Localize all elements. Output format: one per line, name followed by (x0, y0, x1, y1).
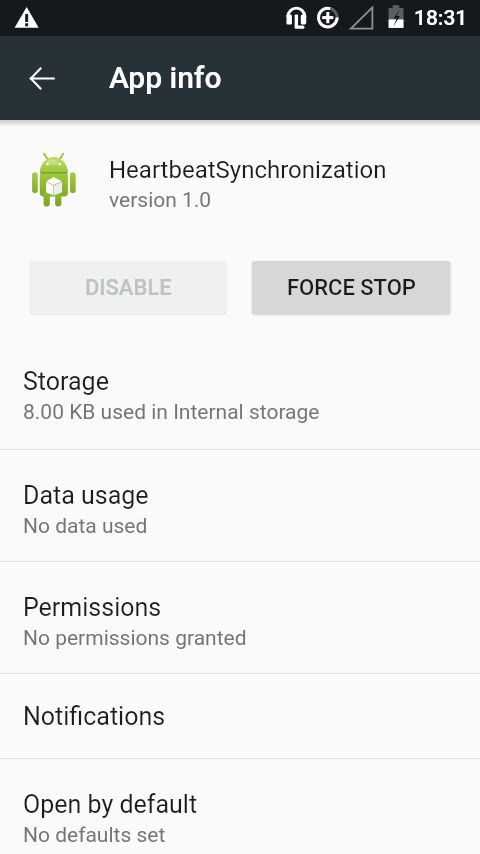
staticText: No defaults set (23, 823, 166, 848)
staticText: Permissions (23, 593, 162, 622)
staticText: 8.00 KB used in Internal storage (23, 400, 320, 425)
staticText: FORCE STOP (287, 275, 416, 301)
staticText: version 1.0 (109, 188, 212, 213)
button[interactable]: Data usage (0, 450, 480, 561)
button[interactable]: DISABLE (30, 261, 226, 314)
staticText: Notifications (23, 702, 166, 731)
button[interactable]: Notifications (0, 674, 480, 758)
staticText: App info (109, 60, 222, 95)
button[interactable]: Storage (0, 336, 480, 449)
button[interactable]: Open by default (0, 759, 480, 854)
button[interactable]: Back (18, 54, 66, 102)
staticText: Open by default (23, 790, 198, 819)
staticText: 18:31 (414, 6, 468, 31)
staticText: HeartbeatSynchronization (109, 156, 387, 184)
button[interactable]: Permissions (0, 562, 480, 673)
staticText: No permissions granted (23, 626, 247, 651)
button[interactable]: FORCE STOP (252, 261, 450, 314)
staticText: Data usage (23, 481, 149, 510)
staticText: DISABLE (85, 275, 172, 301)
staticText: Storage (23, 367, 109, 396)
staticText: No data used (23, 514, 148, 539)
